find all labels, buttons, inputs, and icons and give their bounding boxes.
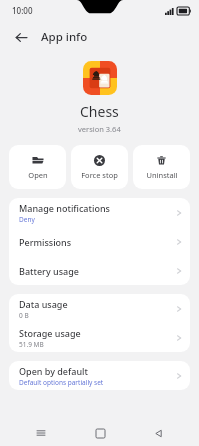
staticText: Storage usage (19, 327, 81, 339)
staticText: Permissions (19, 236, 72, 248)
button[interactable]: Recent apps (24, 422, 58, 444)
staticText: App info (41, 29, 88, 45)
staticText: Chess (80, 102, 119, 121)
button[interactable]: Permissions (9, 227, 190, 256)
button[interactable]: Force stop (71, 145, 128, 189)
button[interactable]: Open by default (9, 361, 190, 390)
button[interactable]: Uninstall (133, 145, 190, 189)
button[interactable]: Storage usage (9, 323, 190, 352)
button[interactable]: Back (141, 422, 175, 444)
staticText: Force stop (81, 170, 118, 180)
staticText: Default options partially set (19, 378, 104, 387)
staticText: Manage notifications (19, 202, 110, 214)
staticText: 0 B (19, 311, 29, 320)
staticText: Battery usage (19, 265, 79, 277)
staticText: Uninstall (146, 170, 178, 180)
staticText: Deny (19, 215, 35, 224)
button[interactable]: Open (9, 145, 66, 189)
button[interactable]: Home (83, 422, 117, 444)
button[interactable]: Manage notifications (9, 198, 190, 227)
button[interactable]: Data usage (9, 294, 190, 323)
staticText: version 3.64 (78, 124, 121, 134)
staticText: Data usage (19, 298, 68, 310)
staticText: Open (28, 170, 48, 180)
staticText: 51.9 MB (19, 340, 44, 349)
staticText: 10:00 (12, 5, 33, 16)
staticText: Open by default (19, 365, 88, 377)
button[interactable]: Back (10, 26, 32, 48)
button[interactable]: Battery usage (9, 256, 190, 285)
